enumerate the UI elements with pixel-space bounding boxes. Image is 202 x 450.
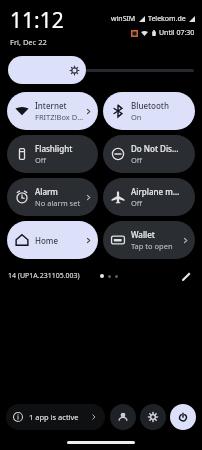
button[interactable]: Power (170, 404, 196, 430)
staticText: No alarm set (35, 198, 81, 208)
staticText: Home (35, 235, 59, 246)
staticText: Bluetooth (131, 100, 169, 111)
button[interactable]: Flashlight (7, 135, 98, 173)
button[interactable]: Edit tiles (178, 268, 194, 284)
button[interactable]: Airplane mode (103, 178, 195, 216)
staticText: Tap to open (131, 241, 173, 251)
staticText: Alarm (35, 186, 58, 197)
staticText: 11:12 (10, 6, 64, 35)
button[interactable]: Settings (140, 404, 166, 430)
staticText: Do Not Disturb (131, 143, 181, 154)
staticText: Wallet (131, 229, 155, 240)
button[interactable]: Bluetooth (103, 92, 195, 130)
staticText: FRITZ!Box DS.. (35, 112, 84, 122)
button[interactable]: 1 app is active (6, 404, 105, 430)
staticText: Internet (35, 100, 67, 111)
staticText: Until 07:30 (159, 28, 195, 38)
staticText: 1 app is active (29, 412, 79, 422)
button[interactable]: Do Not Disturb (103, 135, 195, 173)
staticText: Off (131, 155, 143, 165)
button[interactable]: Account (110, 404, 136, 430)
staticText: Flashlight (35, 143, 73, 154)
staticText: 14 (UP1A.231105.003) (8, 271, 80, 281)
button[interactable]: Home (7, 221, 98, 259)
button[interactable]: Alarm (7, 178, 98, 216)
staticText: winSIM (111, 14, 136, 24)
staticText: Airplane mode (131, 186, 181, 197)
button[interactable]: Internet (7, 92, 98, 130)
staticText: Off (131, 198, 143, 208)
button[interactable]: Wallet (103, 221, 195, 259)
staticText: Off (35, 155, 47, 165)
staticText: On (131, 112, 142, 122)
staticText: Telekom.de (148, 14, 186, 24)
staticText: Fri, Dec 22 (10, 37, 47, 47)
button[interactable] (8, 56, 194, 84)
